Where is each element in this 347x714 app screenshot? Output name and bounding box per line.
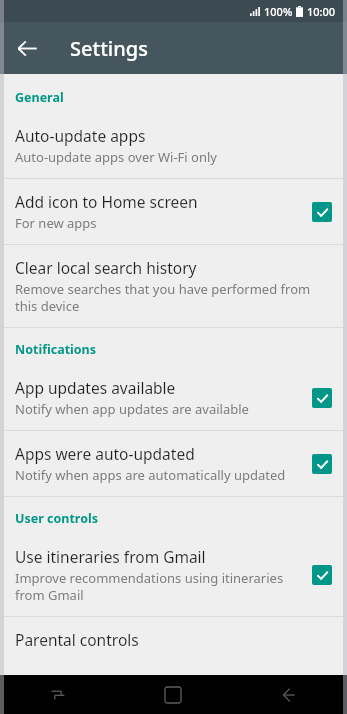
staticText: General	[15, 89, 347, 106]
staticText: Apps were auto-updated	[15, 443, 195, 464]
button[interactable]: Apps were auto-updated	[0, 431, 347, 496]
button[interactable]: Apps were auto-updated	[312, 454, 332, 474]
staticText: Use itineraries from Gmail	[15, 546, 206, 567]
staticText: Auto-update apps over Wi-Fi only	[15, 148, 217, 166]
staticText: Notify when apps are automatically updat…	[15, 466, 286, 484]
button[interactable]: Use itineraries from Gmail	[312, 565, 332, 585]
button[interactable]: Clear local search history	[0, 245, 347, 327]
button[interactable]: Home	[115, 675, 231, 714]
button[interactable]: Back	[231, 675, 347, 714]
staticText: 100%	[264, 4, 293, 19]
staticText: For new apps	[15, 214, 97, 232]
staticText: Remove searches that you have performed …	[15, 280, 332, 315]
staticText: Parental controls	[15, 629, 139, 650]
staticText: Notifications	[15, 341, 347, 358]
button[interactable]: Add icon to Home screen	[0, 179, 347, 244]
staticText: User controls	[15, 510, 347, 527]
staticText: App updates available	[15, 377, 176, 398]
button[interactable]: Parental controls	[0, 617, 347, 662]
button[interactable]: Auto-update apps	[0, 113, 347, 178]
staticText: 10:00	[307, 4, 336, 19]
staticText: Improve recommendations using itinerarie…	[15, 569, 300, 604]
button[interactable]: Recents	[0, 675, 115, 714]
staticText: Clear local search history	[15, 257, 197, 278]
button[interactable]: Use itineraries from Gmail	[0, 534, 347, 616]
button[interactable]: App updates available	[0, 365, 347, 430]
staticText: Notify when app updates are available	[15, 400, 249, 418]
staticText: Settings	[70, 35, 148, 62]
staticText: Add icon to Home screen	[15, 191, 198, 212]
button[interactable]: Add icon to Home screen	[312, 202, 332, 222]
button[interactable]: Back	[6, 27, 48, 69]
staticText: Auto-update apps	[15, 125, 146, 146]
button[interactable]: App updates available	[312, 388, 332, 408]
